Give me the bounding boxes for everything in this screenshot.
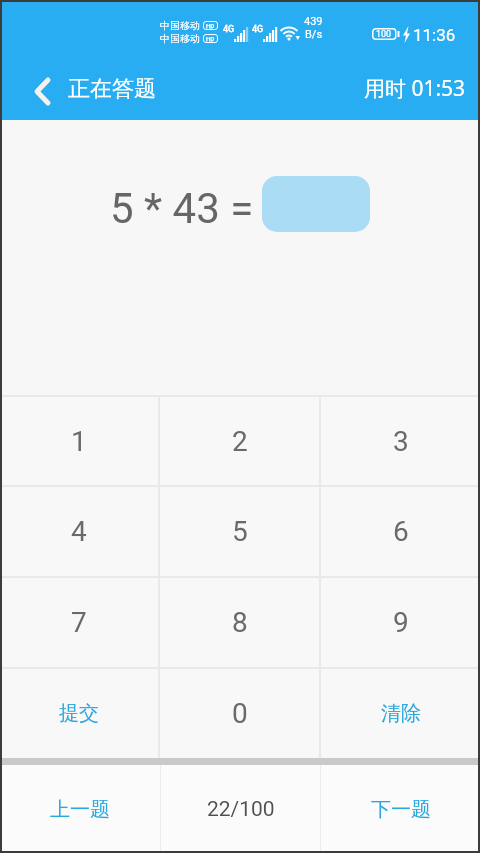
staticText: 下一题	[371, 797, 431, 822]
staticText: 6	[393, 515, 409, 548]
staticText: 7	[71, 606, 87, 639]
staticText: 0	[232, 697, 248, 730]
staticText: 清除	[381, 701, 421, 726]
button[interactable]: 8	[160, 578, 319, 667]
button[interactable]: 7	[0, 578, 158, 667]
button[interactable]: 22/100	[161, 765, 320, 853]
button[interactable]: 5	[160, 487, 319, 576]
staticText: 4G	[223, 24, 235, 35]
staticText: 8	[232, 606, 248, 639]
staticText: 用时 01:53	[364, 74, 466, 103]
staticText: HD	[206, 22, 215, 29]
button[interactable]: 0	[160, 669, 319, 758]
button[interactable]: 4	[0, 487, 158, 576]
staticText: 3	[393, 425, 409, 458]
staticText: 提交	[59, 701, 99, 726]
staticText: 439	[304, 15, 323, 28]
staticText: 4	[71, 515, 87, 548]
button[interactable]: 2	[160, 397, 319, 485]
button[interactable]: 下一题	[321, 765, 480, 853]
button[interactable]: 上一题	[0, 765, 160, 853]
button[interactable]: 9	[321, 578, 480, 667]
button[interactable]: 6	[321, 487, 480, 576]
staticText: 正在答题	[68, 75, 156, 103]
button[interactable]	[262, 176, 370, 232]
staticText: 2	[232, 425, 248, 458]
staticText: 中国移动	[160, 19, 200, 31]
staticText: 11:36	[413, 25, 456, 45]
staticText: HD	[206, 35, 215, 42]
staticText: 4G	[252, 24, 264, 35]
staticText: 100	[376, 29, 392, 40]
button[interactable]: 提交	[0, 669, 158, 758]
staticText: 5	[232, 515, 248, 548]
button[interactable]: 3	[321, 397, 480, 485]
button[interactable]: 1	[0, 397, 158, 485]
staticText: 22/100	[207, 797, 275, 822]
staticText: 中国移动	[160, 32, 200, 44]
button[interactable]	[26, 73, 52, 105]
staticText: 上一题	[50, 797, 110, 822]
staticText: 5 * 43 =	[110, 184, 254, 233]
staticText: 1	[71, 425, 87, 458]
staticText: 9	[393, 606, 409, 639]
button[interactable]: 清除	[321, 669, 480, 758]
staticText: B/s	[305, 28, 323, 41]
